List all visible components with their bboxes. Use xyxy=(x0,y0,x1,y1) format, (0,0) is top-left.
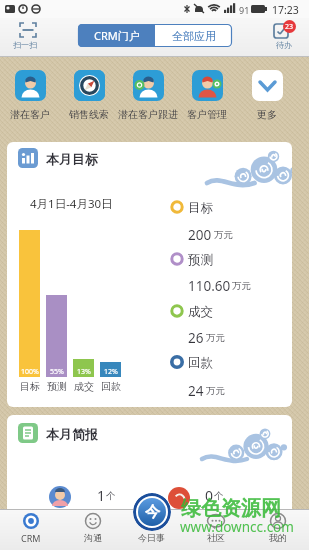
button[interactable] xyxy=(60,70,119,122)
staticText: 100% xyxy=(21,367,39,377)
staticText: 本月简报 xyxy=(46,426,98,442)
button[interactable]: 全部应用 xyxy=(155,24,232,47)
staticText: 目标 xyxy=(20,380,40,393)
staticText: 潜在客户跟进 xyxy=(118,108,178,121)
staticText: 目标 xyxy=(188,200,213,216)
staticText: 91 xyxy=(239,4,250,16)
staticText: 万元 xyxy=(206,385,225,397)
button[interactable] xyxy=(237,70,297,122)
button[interactable]: 今 xyxy=(133,493,171,531)
staticText: 全部应用 xyxy=(172,29,216,43)
staticText: 17:23 xyxy=(272,3,299,17)
staticText: 销售线索 xyxy=(69,108,109,121)
staticText: 成交 xyxy=(188,304,213,320)
staticText: 预测 xyxy=(47,380,67,393)
staticText: 万元 xyxy=(206,332,225,344)
staticText: 客户管理 xyxy=(187,108,227,121)
staticText: 待办 xyxy=(276,40,292,50)
staticText: 本月目标 xyxy=(46,151,98,167)
button[interactable] xyxy=(178,70,237,122)
staticText: 12% xyxy=(104,367,118,377)
staticText: 成交 xyxy=(74,380,94,393)
staticText: CRM xyxy=(21,532,41,544)
staticText: 24 xyxy=(188,382,204,400)
staticText: 1 xyxy=(97,486,106,505)
staticText: 110.60 xyxy=(188,277,231,295)
staticText: 我的 xyxy=(269,532,287,543)
button[interactable]: 扫一扫 xyxy=(8,22,48,54)
staticText: 预测 xyxy=(188,252,213,268)
button[interactable] xyxy=(189,509,245,550)
button[interactable] xyxy=(119,70,178,122)
staticText: www.downcc.com xyxy=(180,518,294,536)
button[interactable] xyxy=(65,509,121,550)
button[interactable] xyxy=(1,70,60,122)
staticText: 万元 xyxy=(232,280,251,292)
button[interactable] xyxy=(251,509,307,550)
staticText: CRM门户 xyxy=(94,28,140,43)
staticText: 个 xyxy=(214,490,224,502)
staticText: 4月1日-4月30日 xyxy=(30,196,113,212)
staticText: 扫一扫 xyxy=(13,40,37,50)
button[interactable]: CRM门户 xyxy=(78,24,155,47)
staticText: 今 xyxy=(145,503,160,522)
button[interactable] xyxy=(3,509,59,550)
button[interactable]: 23 xyxy=(266,20,304,54)
staticText: 个 xyxy=(106,490,116,502)
staticText: 更多 xyxy=(257,108,277,121)
staticText: 今日事 xyxy=(138,532,165,543)
staticText: 潜在客户 xyxy=(10,108,50,121)
staticText: 23 xyxy=(285,22,294,32)
staticText: 26 xyxy=(188,329,204,347)
staticText: 55% xyxy=(50,367,64,377)
staticText: 0 xyxy=(205,486,214,505)
staticText: 200 xyxy=(188,226,212,244)
staticText: 绿色资源网 xyxy=(181,496,281,521)
staticText: 回款 xyxy=(188,355,213,371)
staticText: 万元 xyxy=(214,229,233,241)
staticText: 社区 xyxy=(207,532,225,543)
staticText: 沟通 xyxy=(84,532,102,543)
staticText: 回款 xyxy=(101,380,121,393)
button[interactable] xyxy=(127,509,183,550)
staticText: 13% xyxy=(77,367,91,377)
